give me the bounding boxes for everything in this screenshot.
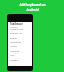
button[interactable]: Sint — [8, 52, 32, 56]
button[interactable]: Suriname — [8, 39, 32, 43]
staticText: Taalkeuze — [10, 22, 23, 26]
staticText: Sint — [10, 53, 15, 56]
button[interactable]: English UK — [8, 30, 32, 34]
button[interactable]: Belgie — [8, 35, 32, 39]
staticText: Belgie — [10, 36, 17, 39]
staticText: English UK — [10, 31, 22, 34]
staticText: Curacao — [10, 49, 20, 52]
staticText: Vlaams — [10, 58, 19, 61]
staticText: Toetsen — [10, 26, 18, 29]
staticText: Add keyboard on Android — [19, 3, 46, 12]
button[interactable]: Add keyboard on Android — [3, 3, 61, 12]
staticText: Suriname — [10, 40, 21, 43]
staticText: Aruba — [10, 44, 17, 47]
button[interactable]: Curacao — [8, 48, 32, 52]
button[interactable]: Vlaams — [8, 57, 32, 61]
staticText: Nederlands — [10, 27, 24, 30]
button[interactable]: Nederlands — [8, 26, 32, 30]
button[interactable]: Aruba — [8, 43, 32, 47]
